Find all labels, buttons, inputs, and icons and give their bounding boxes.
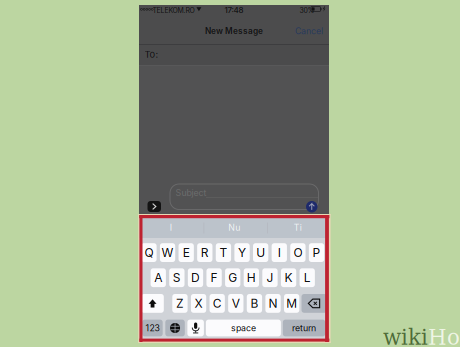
- staticText: T: [219, 245, 227, 260]
- button[interactable]: E: [178, 243, 194, 262]
- button[interactable]: Shift: [141, 294, 164, 313]
- staticText: Y: [238, 245, 246, 260]
- staticText: Nu: [228, 222, 240, 233]
- staticText: Ti: [294, 222, 302, 233]
- button[interactable]: 123: [142, 320, 163, 336]
- staticText: To:: [144, 49, 158, 60]
- button[interactable]: B: [247, 294, 262, 313]
- button[interactable]: U: [253, 243, 268, 262]
- button[interactable]: Z: [172, 294, 188, 313]
- button[interactable]: C: [209, 294, 225, 313]
- staticText: Subject: [175, 187, 206, 198]
- staticText: H: [247, 270, 256, 285]
- button[interactable]: Y: [234, 243, 250, 262]
- button[interactable]: J: [262, 268, 278, 287]
- button[interactable]: O: [290, 243, 306, 262]
- button[interactable]: Ti: [266, 218, 329, 237]
- staticText: L: [304, 270, 311, 285]
- button[interactable]: Q: [141, 243, 157, 262]
- staticText: wiki: [383, 325, 428, 347]
- button[interactable]: K: [281, 268, 296, 287]
- button[interactable]: iMessage apps: [147, 201, 161, 212]
- button[interactable]: To:: [139, 44, 329, 64]
- button[interactable]: Next keyboard: [165, 320, 185, 336]
- staticText: return: [292, 323, 316, 333]
- button[interactable]: V: [228, 294, 243, 313]
- button[interactable]: W: [160, 243, 175, 262]
- staticText: B: [250, 296, 258, 311]
- staticText: F: [211, 270, 218, 285]
- button[interactable]: space: [206, 320, 281, 336]
- staticText: M: [286, 296, 297, 311]
- staticText: X: [195, 296, 203, 311]
- staticText: 17:48: [224, 5, 243, 15]
- staticText: Cancel: [295, 26, 323, 36]
- staticText: R: [201, 245, 209, 260]
- button[interactable]: S: [169, 268, 184, 287]
- staticText: O: [293, 245, 302, 260]
- staticText: P: [312, 245, 320, 260]
- staticText: How: [428, 325, 460, 347]
- button[interactable]: Nu: [202, 218, 266, 237]
- button[interactable]: return: [283, 320, 325, 336]
- button[interactable]: H: [244, 268, 259, 287]
- button[interactable]: D: [188, 268, 203, 287]
- staticText: I: [170, 222, 172, 233]
- staticText: N: [268, 296, 277, 311]
- button[interactable]: G: [225, 268, 240, 287]
- staticText: E: [183, 245, 190, 260]
- button[interactable]: R: [197, 243, 212, 262]
- button[interactable]: N: [265, 294, 281, 313]
- staticText: W: [162, 245, 174, 260]
- staticText: Z: [176, 296, 184, 311]
- staticText: V: [232, 296, 240, 311]
- staticText: TELEKOM.RO: [153, 6, 195, 15]
- staticText: 123: [145, 323, 159, 333]
- staticText: U: [256, 245, 265, 260]
- button[interactable]: A: [151, 268, 166, 287]
- button[interactable]: P: [309, 243, 324, 262]
- staticText: Q: [144, 245, 153, 260]
- staticText: D: [191, 270, 200, 285]
- staticText: New Message: [205, 26, 263, 36]
- staticText: I: [278, 245, 281, 260]
- button[interactable]: I: [139, 218, 202, 237]
- staticText: G: [228, 270, 237, 285]
- staticText: C: [213, 296, 222, 311]
- button[interactable]: Send: [306, 201, 317, 212]
- button[interactable]: Cancel: [283, 20, 323, 42]
- button[interactable]: Delete: [301, 294, 327, 313]
- button[interactable]: L: [300, 268, 315, 287]
- button[interactable]: T: [216, 243, 231, 262]
- staticText: space: [231, 323, 256, 333]
- staticText: S: [173, 270, 181, 285]
- button[interactable]: F: [206, 268, 222, 287]
- button[interactable]: M: [284, 294, 299, 313]
- staticText: A: [154, 270, 162, 285]
- button[interactable]: Dictation: [187, 320, 204, 336]
- button[interactable]: I: [272, 243, 287, 262]
- button[interactable]: X: [191, 294, 206, 313]
- staticText: J: [266, 270, 273, 285]
- staticText: K: [285, 270, 293, 285]
- staticText: 30%: [300, 6, 315, 15]
